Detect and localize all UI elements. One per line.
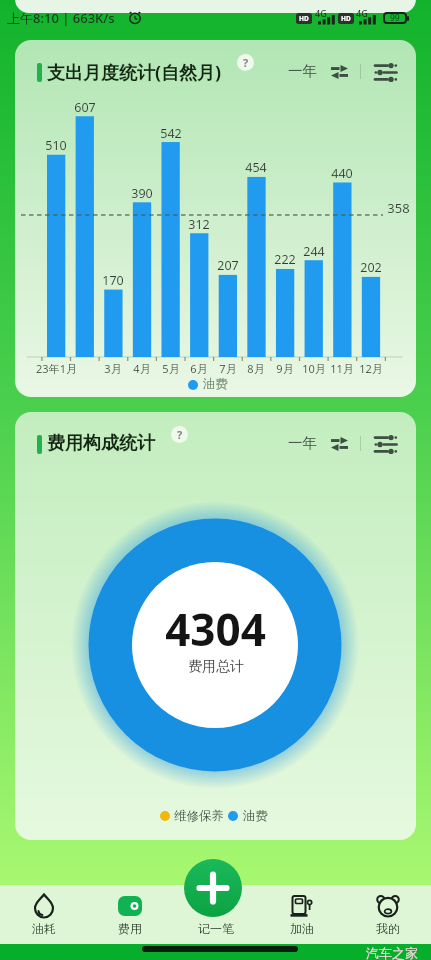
staticText: 油费: [243, 808, 268, 824]
button[interactable]: 加油: [259, 885, 345, 936]
button[interactable]: ?: [171, 426, 188, 443]
staticText: 油耗: [32, 921, 56, 936]
staticText: 4304: [165, 599, 266, 659]
staticText: 510: [45, 137, 67, 154]
staticText: 607: [74, 99, 96, 116]
staticText: 费用总计: [188, 658, 244, 676]
staticText: 上午8:10 | 663K/s: [7, 9, 115, 27]
staticText: 我的: [376, 921, 400, 936]
staticText: 5月: [162, 361, 180, 376]
staticText: 6月: [190, 361, 208, 376]
button[interactable]: [371, 432, 401, 456]
staticText: 一年: [288, 62, 317, 80]
staticText: 244: [303, 243, 325, 260]
staticText: 10月: [302, 361, 326, 376]
staticText: 11月: [330, 361, 354, 376]
staticText: 9月: [276, 361, 294, 376]
button[interactable]: [327, 61, 353, 83]
staticText: 202: [360, 259, 382, 276]
staticText: 4G: [356, 7, 368, 19]
staticText: 3月: [104, 361, 122, 376]
button[interactable]: 一年: [285, 60, 319, 82]
button[interactable]: 一年: [285, 432, 319, 454]
staticText: 542: [160, 125, 182, 142]
button[interactable]: [327, 433, 353, 455]
staticText: 454: [245, 159, 267, 176]
staticText: 4G: [315, 7, 327, 19]
staticText: 8月: [247, 361, 265, 376]
staticText: 维修保养: [174, 808, 224, 824]
staticText: ?: [243, 55, 249, 70]
staticText: 汽车之家: [366, 945, 418, 960]
staticText: 记一笔: [198, 921, 234, 936]
staticText: HD: [341, 14, 351, 23]
staticText: 99: [390, 12, 400, 24]
staticText: 440: [331, 165, 353, 182]
button[interactable]: [371, 60, 401, 84]
staticText: 油费: [203, 376, 228, 392]
button[interactable]: 费用: [87, 885, 173, 936]
staticText: 222: [274, 251, 296, 268]
staticText: 170: [102, 272, 124, 289]
staticText: 7月: [219, 361, 237, 376]
staticText: 12月: [359, 361, 383, 376]
staticText: 207: [217, 257, 239, 274]
staticText: 费用: [118, 921, 142, 936]
staticText: 一年: [288, 434, 317, 452]
staticText: 312: [188, 216, 210, 233]
staticText: 23年1月: [36, 361, 77, 376]
button[interactable]: [184, 859, 242, 917]
staticText: 358: [387, 199, 410, 217]
staticText: 390: [131, 185, 153, 202]
staticText: HD: [299, 14, 309, 23]
staticText: 支出月度统计(自然月): [47, 60, 222, 85]
button[interactable]: 我的: [345, 885, 431, 936]
staticText: 加油: [290, 921, 314, 936]
staticText: ?: [177, 427, 183, 442]
staticText: 费用构成统计: [47, 432, 155, 455]
button[interactable]: 油耗: [0, 885, 87, 936]
staticText: 4月: [133, 361, 151, 376]
button[interactable]: 记一笔: [173, 885, 259, 936]
button[interactable]: ?: [237, 54, 254, 71]
